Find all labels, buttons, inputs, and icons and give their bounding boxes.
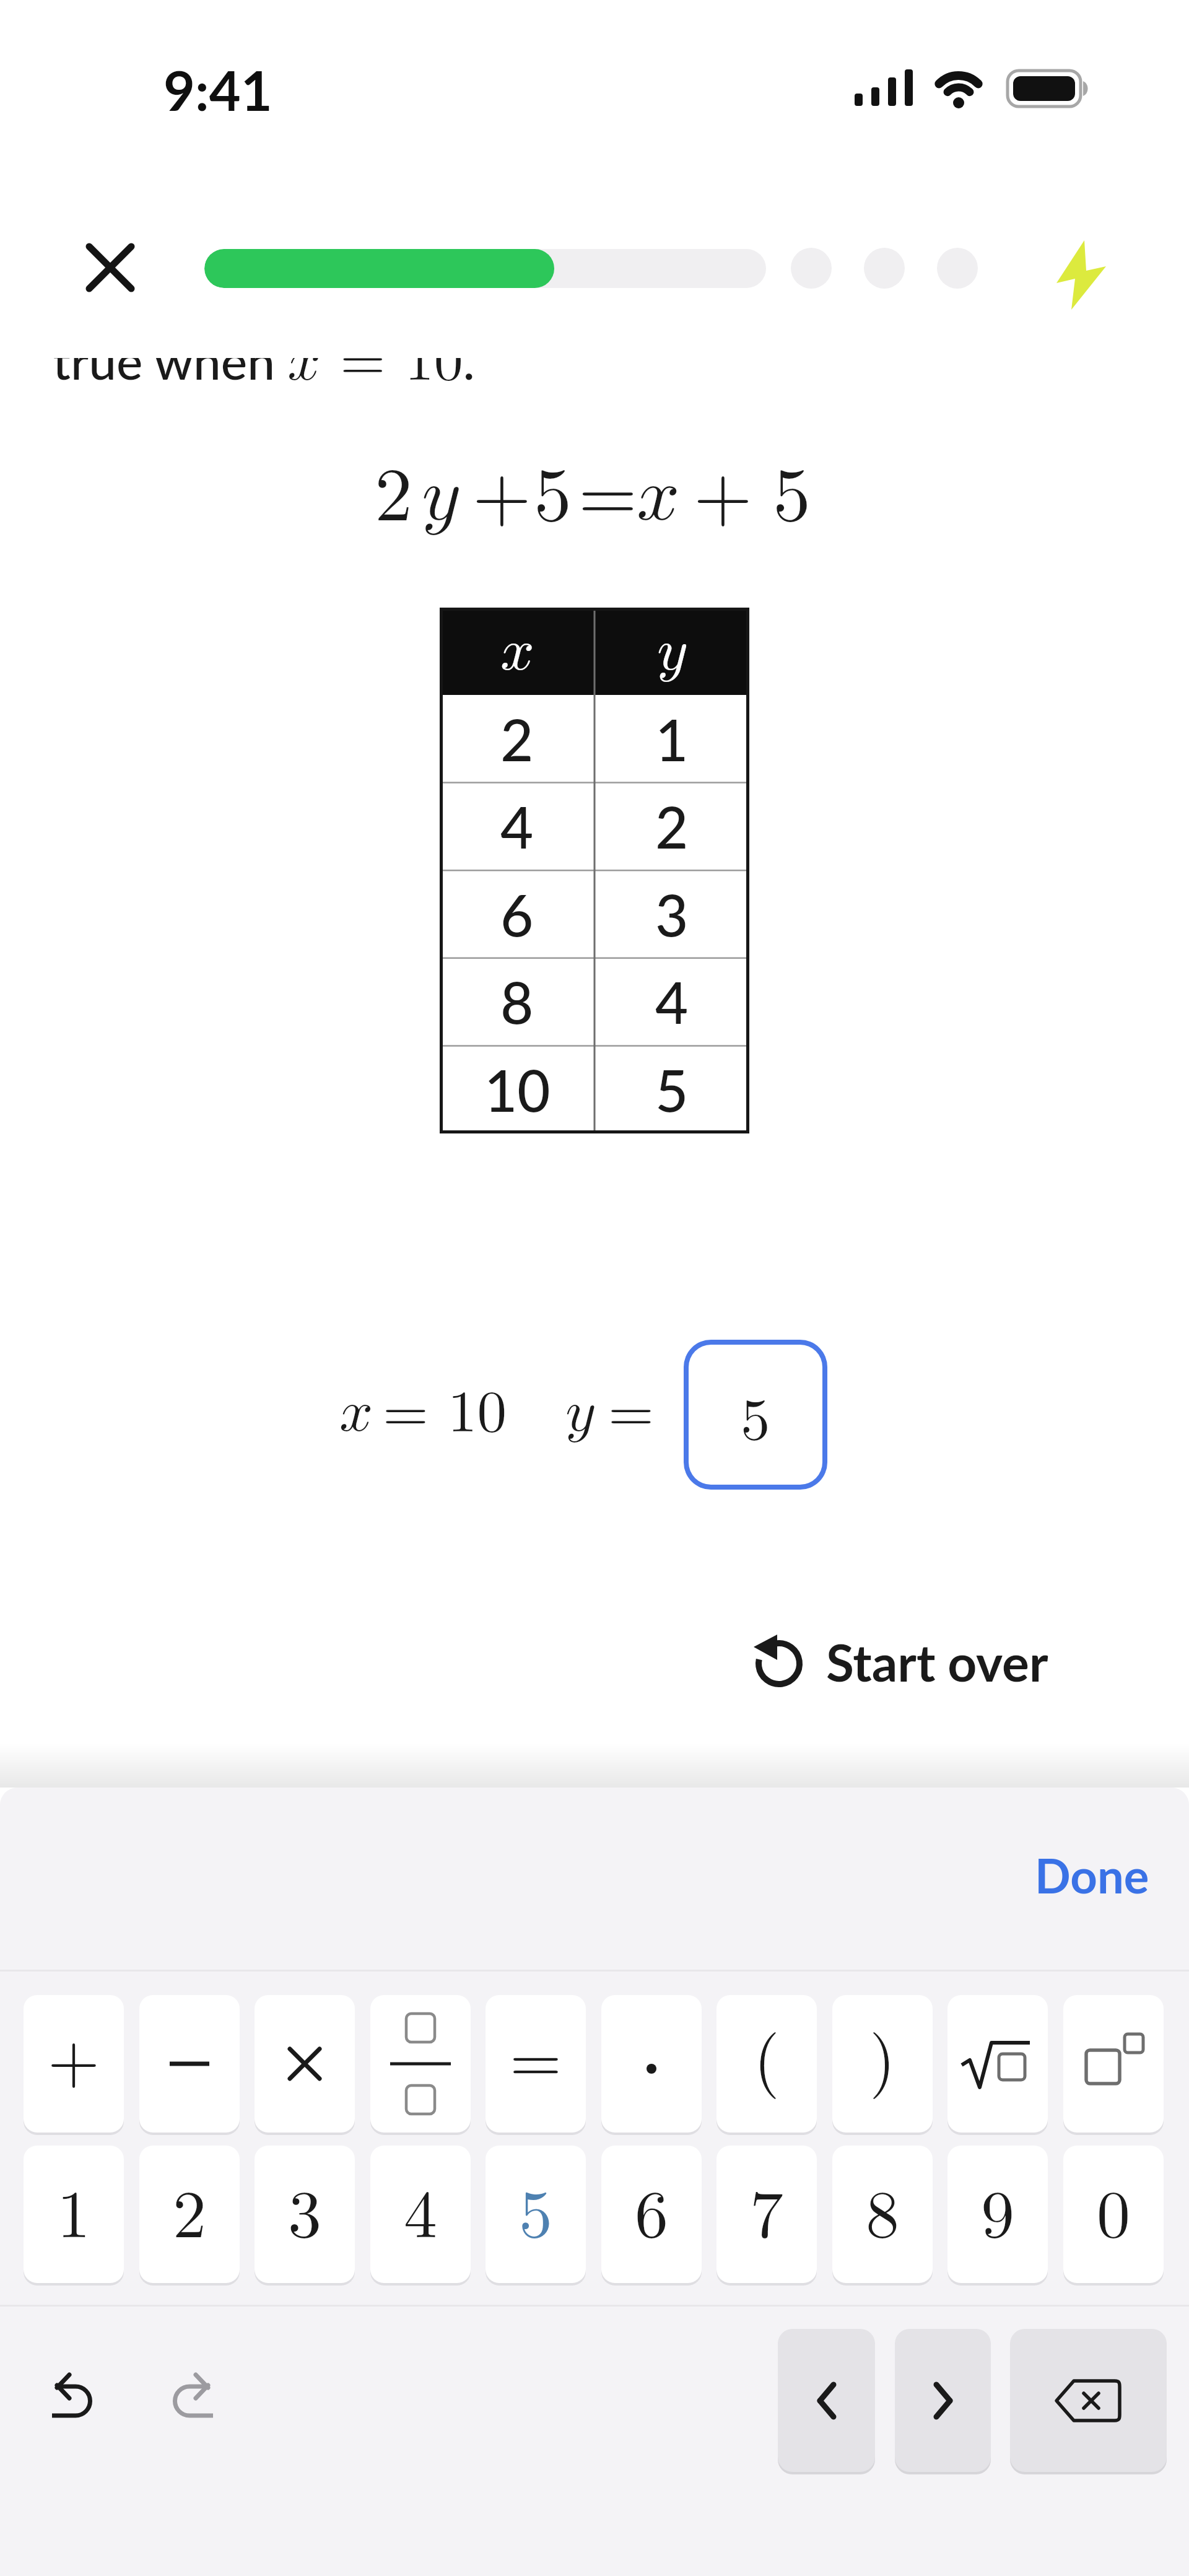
staticText: 6 (500, 880, 534, 948)
staticText: 4 (404, 2162, 438, 2256)
button[interactable] (1047, 234, 1116, 316)
staticText: 8 (866, 2162, 900, 2256)
staticText: ) (869, 2007, 896, 2102)
button[interactable]: 5 (486, 2146, 586, 2283)
button[interactable]: Start over (751, 1628, 1048, 1696)
button[interactable]: 9 (947, 2146, 1048, 2283)
staticText: 3 (655, 880, 689, 948)
button[interactable]: ( (716, 1995, 817, 2133)
staticText: 𝑥 (500, 622, 534, 681)
staticText: = (608, 1365, 654, 1449)
staticText: 2 (173, 2162, 207, 2256)
staticText: 9 (981, 2162, 1015, 2256)
staticText: 2 (655, 792, 689, 860)
button[interactable] (79, 237, 141, 299)
staticText: = (383, 1365, 429, 1449)
staticText: + (694, 435, 752, 535)
staticText: 3 (288, 2162, 322, 2256)
staticText: 5 (519, 2162, 553, 2256)
staticText: 2 (500, 705, 534, 773)
button[interactable]: + (24, 1995, 124, 2133)
button[interactable] (947, 1995, 1048, 2133)
staticText: 5 (741, 1373, 770, 1457)
button[interactable] (154, 2357, 228, 2432)
button[interactable]: ) (832, 1995, 933, 2133)
button[interactable]: 8 (832, 2146, 933, 2283)
staticText: true when 𝑥 = 10. (53, 314, 475, 388)
staticText: 10 (448, 1365, 507, 1449)
staticText: 𝑦 (565, 1383, 594, 1442)
staticText: = (578, 435, 637, 535)
button[interactable]: 1 (24, 2146, 124, 2283)
button[interactable] (601, 1995, 702, 2133)
staticText: 5 (655, 1055, 689, 1124)
button[interactable] (895, 2329, 991, 2472)
staticText: 2 (375, 435, 412, 535)
button[interactable] (255, 1995, 355, 2133)
staticText: 5 (773, 435, 811, 535)
button[interactable]: 5 (684, 1340, 827, 1490)
staticText: 1 (655, 705, 689, 773)
staticText: 9:41 (163, 57, 272, 121)
button[interactable] (1010, 2329, 1167, 2472)
staticText: = (510, 2007, 562, 2102)
button[interactable] (37, 2357, 111, 2432)
staticText: 10 (484, 1055, 551, 1124)
button[interactable] (778, 2329, 875, 2472)
button[interactable]: = (486, 1995, 586, 2133)
staticText: 0 (1097, 2162, 1131, 2256)
button[interactable] (139, 1995, 240, 2133)
staticText: ( (754, 2007, 780, 2102)
staticText: 7 (750, 2162, 784, 2256)
staticText: 𝑥 (339, 1383, 373, 1442)
button[interactable]: 2 (139, 2146, 240, 2283)
staticText: 𝑥 (637, 459, 680, 535)
staticText: 4 (500, 792, 534, 860)
button[interactable]: 7 (716, 2146, 817, 2283)
staticText: 8 (500, 967, 534, 1036)
staticText: 4 (655, 967, 689, 1036)
button[interactable]: 6 (601, 2146, 702, 2283)
staticText: + (473, 435, 531, 535)
staticText: 1 (57, 2162, 91, 2256)
button[interactable] (1063, 1995, 1164, 2133)
staticText: 𝑦 (657, 622, 687, 681)
button[interactable]: 3 (255, 2146, 355, 2283)
button[interactable]: 4 (370, 2146, 471, 2283)
staticText: 𝑦 (422, 459, 459, 535)
staticText: 6 (635, 2162, 669, 2256)
button[interactable] (370, 1995, 471, 2133)
staticText: Start over (826, 1631, 1048, 1692)
staticText: + (48, 2007, 100, 2102)
staticText: Done (1035, 1847, 1149, 1903)
button[interactable]: 0 (1063, 2146, 1164, 2283)
staticText: 5 (534, 435, 572, 535)
button[interactable]: Done (964, 1847, 1149, 1903)
